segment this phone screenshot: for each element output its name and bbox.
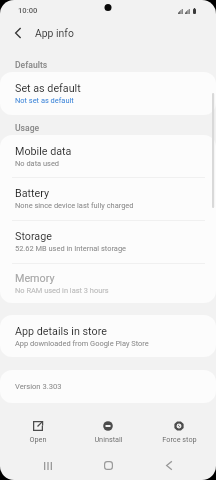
staticText: Version 3.303	[15, 382, 62, 391]
button[interactable]: Uninstall	[78, 414, 138, 446]
button[interactable]: Open	[8, 414, 68, 446]
staticText: Set as default	[15, 82, 81, 95]
staticText: Defaults	[15, 60, 48, 70]
button[interactable]: Storage	[0, 220, 216, 262]
button[interactable]: Back	[4, 19, 32, 47]
button[interactable]: Back	[147, 453, 191, 478]
button[interactable]: Home	[86, 453, 130, 478]
staticText: App downloaded from Google Play Store	[15, 339, 149, 348]
button[interactable]: Recents	[26, 453, 70, 478]
staticText: Usage	[15, 123, 40, 133]
staticText: Mobile data	[15, 145, 72, 158]
staticText: No data used	[15, 159, 60, 168]
staticText: App info	[35, 27, 74, 39]
button[interactable]: App details in store	[0, 315, 216, 357]
staticText: Memory	[15, 272, 55, 285]
button[interactable]: Mobile data	[0, 135, 216, 177]
staticText: 52.62 MB used in Internal storage	[15, 244, 126, 253]
button[interactable]: Version 3.303	[0, 370, 216, 403]
button[interactable]: Force stop	[149, 414, 209, 446]
staticText: Battery	[15, 187, 50, 200]
staticText: Open	[29, 435, 47, 444]
staticText: Uninstall	[94, 435, 123, 444]
staticText: Storage	[15, 230, 52, 243]
staticText: App details in store	[15, 325, 107, 338]
staticText: Not set as default	[15, 96, 74, 105]
staticText: No RAM used in last 3 hours	[15, 286, 109, 295]
button[interactable]: Set as default	[0, 72, 216, 115]
staticText: Force stop	[162, 435, 197, 444]
staticText: 10:00	[18, 6, 38, 15]
button[interactable]: Memory	[0, 263, 216, 304]
staticText: None since device last fully charged	[15, 201, 134, 210]
button[interactable]: Battery	[0, 177, 216, 220]
